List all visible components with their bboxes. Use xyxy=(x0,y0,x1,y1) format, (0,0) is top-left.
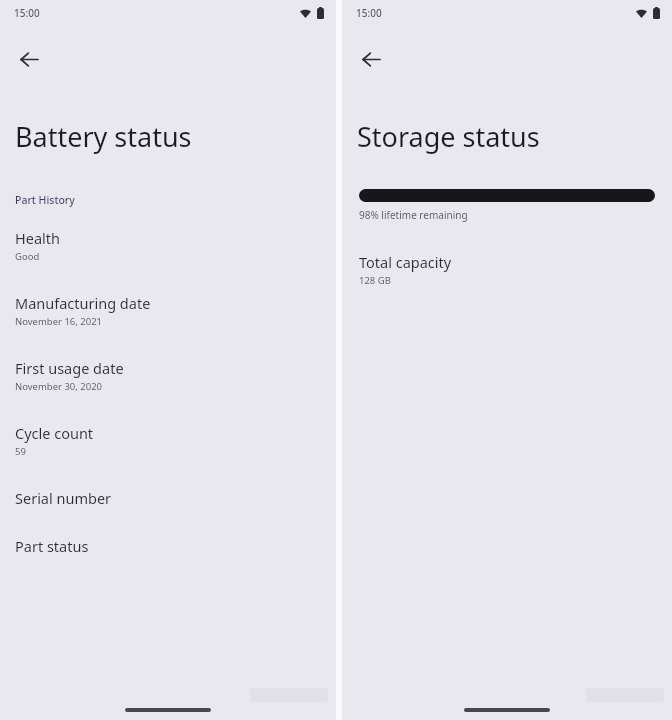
button[interactable]: Back xyxy=(350,38,392,80)
staticText: 15:00 xyxy=(356,6,382,20)
staticText: Storage status xyxy=(357,118,540,155)
staticText: 59 xyxy=(15,445,26,458)
staticText: Manufacturing date xyxy=(15,293,151,313)
staticText: Battery status xyxy=(15,118,192,155)
button[interactable]: Back xyxy=(8,38,50,80)
staticText: 15:00 xyxy=(14,6,40,20)
staticText: Good xyxy=(15,250,40,263)
staticText: Cycle count xyxy=(15,423,94,443)
staticText: Serial number xyxy=(15,488,112,508)
staticText: November 16, 2021 xyxy=(15,315,103,328)
staticText: First usage date xyxy=(15,358,124,378)
button[interactable]: Manufacturing date xyxy=(0,290,336,355)
staticText: Health xyxy=(15,228,60,248)
staticText: Part History xyxy=(15,193,75,207)
staticText: Total capacity xyxy=(359,252,452,272)
button[interactable]: Total capacity xyxy=(342,250,672,293)
staticText: 128 GB xyxy=(359,274,391,287)
button[interactable]: Cycle count xyxy=(0,420,336,485)
button[interactable]: Serial number xyxy=(0,485,336,533)
staticText: November 30, 2020 xyxy=(15,380,103,393)
button[interactable]: First usage date xyxy=(0,355,336,420)
button[interactable]: Health xyxy=(0,225,336,290)
button[interactable]: Part status xyxy=(0,533,336,581)
staticText: Part status xyxy=(15,536,89,556)
staticText: 98% lifetime remaining xyxy=(359,208,468,222)
